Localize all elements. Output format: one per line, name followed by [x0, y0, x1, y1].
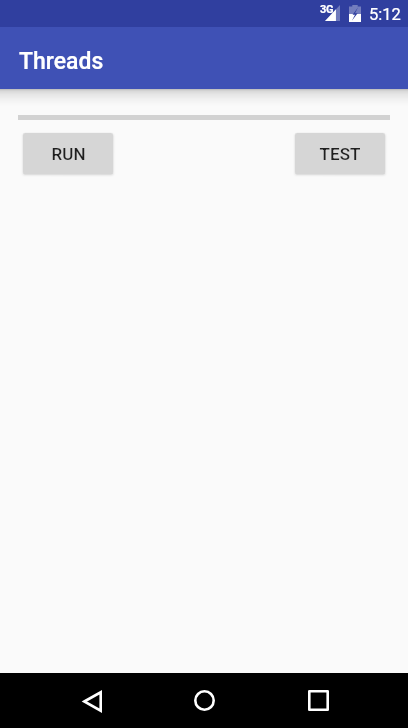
staticText: Threads — [19, 48, 104, 75]
button[interactable]: RUN — [23, 133, 113, 174]
button[interactable]: Home — [176, 673, 232, 728]
button[interactable]: TEST — [295, 133, 385, 174]
button[interactable]: Recent apps — [290, 673, 346, 728]
button[interactable]: Back — [64, 674, 120, 728]
staticText: 5:12 — [369, 5, 401, 24]
staticText: 3G — [320, 3, 334, 16]
staticText: RUN — [51, 144, 86, 164]
staticText: TEST — [319, 144, 361, 164]
